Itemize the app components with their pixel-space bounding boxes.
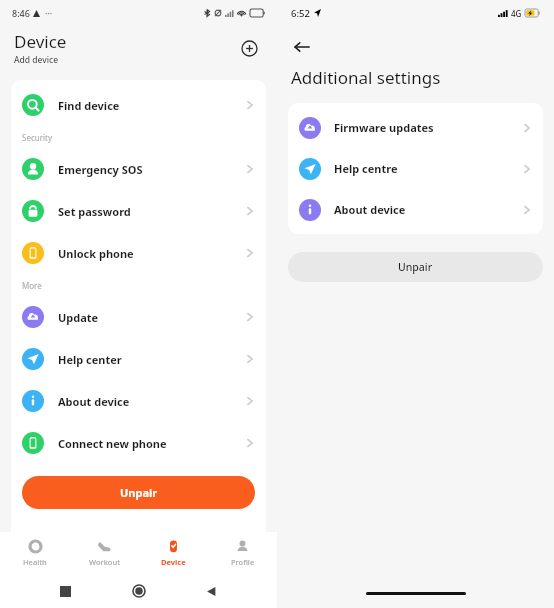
button[interactable]: Connect new phone bbox=[11, 422, 266, 464]
staticText: More bbox=[22, 280, 42, 291]
button[interactable]: Device bbox=[139, 532, 208, 574]
button[interactable]: Set password bbox=[11, 190, 266, 232]
button[interactable]: About device bbox=[11, 380, 266, 422]
staticText: Device bbox=[14, 30, 67, 53]
button[interactable]: Unpair bbox=[22, 476, 255, 509]
staticText: Additional settings bbox=[291, 66, 441, 89]
button[interactable]: Unlock phone bbox=[11, 232, 266, 274]
button[interactable]: Firmware updates bbox=[288, 107, 543, 148]
button[interactable]: About device bbox=[288, 189, 543, 230]
button[interactable]: Help center bbox=[11, 338, 266, 380]
button[interactable]: Emergency SOS bbox=[11, 148, 266, 190]
button[interactable]: Health bbox=[0, 532, 70, 574]
button[interactable]: Profile bbox=[208, 532, 277, 574]
button[interactable]: Add device bbox=[235, 34, 263, 62]
staticText: Unpair bbox=[120, 485, 158, 500]
staticText: About device bbox=[58, 394, 245, 409]
staticText: Health bbox=[23, 557, 47, 567]
staticText: Update bbox=[58, 310, 245, 325]
staticText: ··· bbox=[45, 7, 53, 19]
staticText: 6:52 bbox=[291, 7, 310, 20]
staticText: 4G bbox=[511, 8, 522, 19]
staticText: Firmware updates bbox=[334, 120, 522, 135]
staticText: Unpair bbox=[398, 260, 433, 274]
staticText: Add device bbox=[14, 54, 59, 66]
button[interactable]: Workout bbox=[70, 532, 139, 574]
button[interactable]: Update bbox=[11, 296, 266, 338]
staticText: Connect new phone bbox=[58, 436, 245, 451]
staticText: Workout bbox=[89, 557, 121, 567]
staticText: Unlock phone bbox=[58, 246, 245, 261]
staticText: Help centre bbox=[334, 161, 522, 176]
staticText: Find device bbox=[58, 98, 245, 113]
staticText: 8:46 bbox=[12, 7, 30, 19]
staticText: About device bbox=[334, 202, 522, 217]
button[interactable]: Help centre bbox=[288, 148, 543, 189]
staticText: Profile bbox=[231, 557, 255, 567]
button[interactable]: Find device bbox=[11, 84, 266, 126]
staticText: Security bbox=[22, 132, 53, 143]
staticText: Device bbox=[161, 557, 186, 567]
staticText: Emergency SOS bbox=[58, 162, 245, 177]
button[interactable]: Back bbox=[291, 36, 313, 58]
staticText: Set password bbox=[58, 204, 245, 219]
staticText: Help center bbox=[58, 352, 245, 367]
button[interactable]: Unpair bbox=[288, 252, 543, 282]
